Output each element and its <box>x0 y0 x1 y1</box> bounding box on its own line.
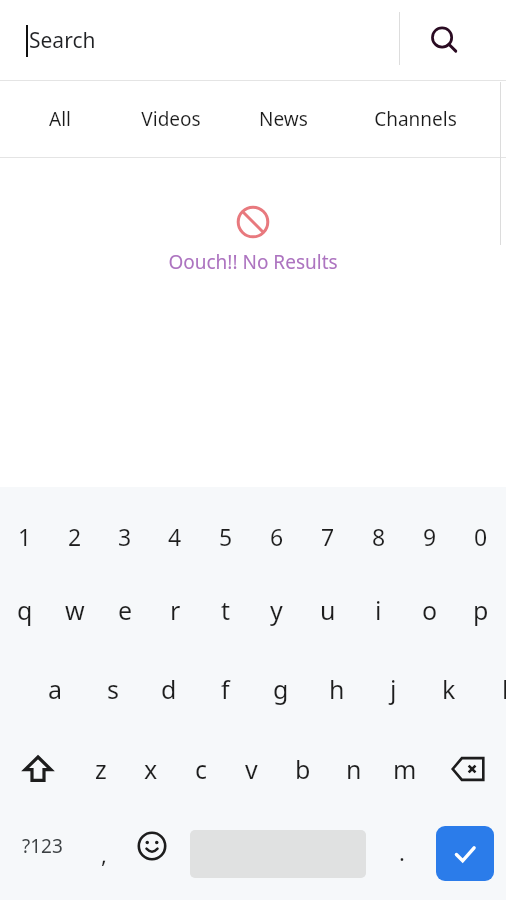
button[interactable]: e <box>100 571 150 649</box>
staticText: j <box>390 672 397 706</box>
button[interactable]: ?123 <box>0 809 84 883</box>
staticText: 1 <box>18 521 32 552</box>
button[interactable]: 9 <box>404 501 455 571</box>
button[interactable]: o <box>404 571 455 649</box>
staticText: d <box>161 672 177 706</box>
staticText: 4 <box>168 521 182 552</box>
staticText: 9 <box>423 521 437 552</box>
staticText: All <box>49 106 71 132</box>
button[interactable]: 6 <box>251 501 302 571</box>
button[interactable]: j <box>365 649 421 729</box>
button[interactable]: t <box>200 571 251 649</box>
button[interactable]: y <box>251 571 302 649</box>
staticText: r <box>170 593 181 627</box>
button[interactable]: m <box>379 729 430 809</box>
staticText: b <box>295 752 311 786</box>
button[interactable]: 7 <box>302 501 353 571</box>
button[interactable]: r <box>150 571 200 649</box>
staticText: 5 <box>219 521 233 552</box>
button[interactable]: Shift <box>0 729 76 809</box>
button[interactable]: c <box>176 729 226 809</box>
button[interactable]: Search <box>414 10 474 70</box>
button[interactable]: d <box>141 649 197 729</box>
staticText: l <box>502 672 506 706</box>
button[interactable]: f <box>197 649 253 729</box>
button[interactable]: News <box>248 81 318 157</box>
staticText: m <box>393 752 417 786</box>
staticText: 6 <box>270 521 284 552</box>
button[interactable]: q <box>0 571 50 649</box>
staticText: Channels <box>374 106 457 132</box>
button[interactable]: Emoji <box>128 809 176 883</box>
button[interactable]: 4 <box>150 501 200 571</box>
button[interactable]: z <box>76 729 126 809</box>
button[interactable]: v <box>226 729 277 809</box>
button[interactable]: k <box>421 649 477 729</box>
button[interactable]: l <box>477 649 506 729</box>
button[interactable]: Backspace <box>430 729 506 809</box>
button[interactable]: 1 <box>0 501 50 571</box>
staticText: i <box>375 593 382 627</box>
staticText: q <box>17 593 33 627</box>
staticText: a <box>48 672 63 706</box>
button[interactable]: u <box>302 571 353 649</box>
button[interactable]: All <box>30 81 89 157</box>
staticText: Videos <box>141 106 201 132</box>
staticText: s <box>107 672 119 706</box>
button[interactable]: , <box>80 809 128 883</box>
button[interactable]: 8 <box>353 501 404 571</box>
staticText: t <box>221 593 231 627</box>
staticText: o <box>422 593 438 627</box>
staticText: 3 <box>118 521 132 552</box>
button[interactable]: p <box>455 571 506 649</box>
staticText: 0 <box>474 521 488 552</box>
button[interactable]: n <box>328 729 379 809</box>
button[interactable]: Enter <box>436 826 494 881</box>
staticText: e <box>118 593 133 627</box>
staticText: u <box>320 593 336 627</box>
staticText: . <box>399 837 405 867</box>
button[interactable]: w <box>50 571 100 649</box>
button[interactable]: i <box>353 571 404 649</box>
button[interactable]: Videos <box>125 81 217 157</box>
staticText: x <box>144 752 158 786</box>
button[interactable]: x <box>126 729 176 809</box>
staticText: g <box>273 672 289 706</box>
staticText: , <box>101 839 107 869</box>
button[interactable]: 2 <box>50 501 100 571</box>
staticText: h <box>329 672 345 706</box>
staticText: n <box>346 752 362 786</box>
staticText: y <box>270 593 283 627</box>
button[interactable]: s <box>84 649 141 729</box>
staticText: Oouch!! No Results <box>168 249 338 275</box>
button[interactable]: b <box>277 729 328 809</box>
button[interactable]: 0 <box>455 501 506 571</box>
staticText: 8 <box>372 521 386 552</box>
staticText: z <box>95 752 107 786</box>
staticText: w <box>65 593 85 627</box>
staticText: v <box>245 752 258 786</box>
staticText: News <box>259 106 308 132</box>
button[interactable]: g <box>253 649 309 729</box>
button[interactable]: 3 <box>100 501 150 571</box>
staticText: 2 <box>68 521 82 552</box>
staticText: k <box>442 672 456 706</box>
button[interactable]: . <box>378 809 426 883</box>
staticText: c <box>195 752 208 786</box>
button[interactable]: Channels <box>358 81 472 157</box>
staticText: f <box>221 672 230 706</box>
button[interactable]: a <box>27 649 84 729</box>
staticText: ?123 <box>22 833 63 859</box>
button[interactable]: 5 <box>200 501 251 571</box>
button[interactable]: h <box>309 649 365 729</box>
staticText: Search <box>29 26 96 55</box>
staticText: 7 <box>321 521 335 552</box>
staticText: p <box>473 593 489 627</box>
